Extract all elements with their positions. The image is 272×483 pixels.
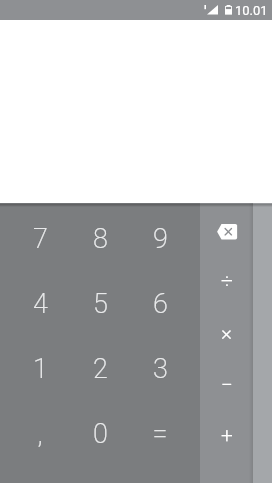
staticText: 5 [93, 288, 108, 320]
button[interactable]: 6 [130, 271, 190, 336]
button[interactable]: 8 [70, 206, 130, 271]
staticText: 10.01 [235, 3, 268, 18]
staticText: 6 [153, 288, 168, 320]
staticText: 4 [33, 288, 48, 320]
button[interactable]: Minus [200, 360, 253, 411]
button[interactable]: 7 [10, 206, 70, 271]
staticText: 9 [153, 223, 168, 255]
staticText: = [152, 418, 168, 450]
button[interactable]: , [10, 401, 70, 466]
button[interactable]: Multiply [200, 309, 253, 360]
button[interactable]: 0 [70, 401, 130, 466]
staticText: 3 [153, 353, 168, 385]
staticText: 0 [93, 418, 108, 450]
staticText: 2 [93, 353, 108, 385]
staticText: , [37, 418, 43, 450]
staticText: × [221, 321, 232, 346]
staticText: ÷ [221, 269, 233, 294]
staticText: 8 [93, 223, 108, 255]
button[interactable]: 4 [10, 271, 70, 336]
staticText: − [221, 373, 233, 398]
button[interactable]: = [130, 401, 190, 466]
button[interactable]: 5 [70, 271, 130, 336]
staticText: 1 [33, 353, 48, 385]
button[interactable]: 1 [10, 336, 70, 401]
button[interactable]: 9 [130, 206, 190, 271]
button[interactable]: Delete [200, 206, 253, 258]
staticText: + [221, 423, 233, 448]
staticText: 7 [33, 223, 48, 255]
button[interactable]: Plus [200, 411, 253, 462]
button[interactable]: 2 [70, 336, 130, 401]
button[interactable]: 3 [130, 336, 190, 401]
button[interactable]: Divide [200, 258, 253, 309]
